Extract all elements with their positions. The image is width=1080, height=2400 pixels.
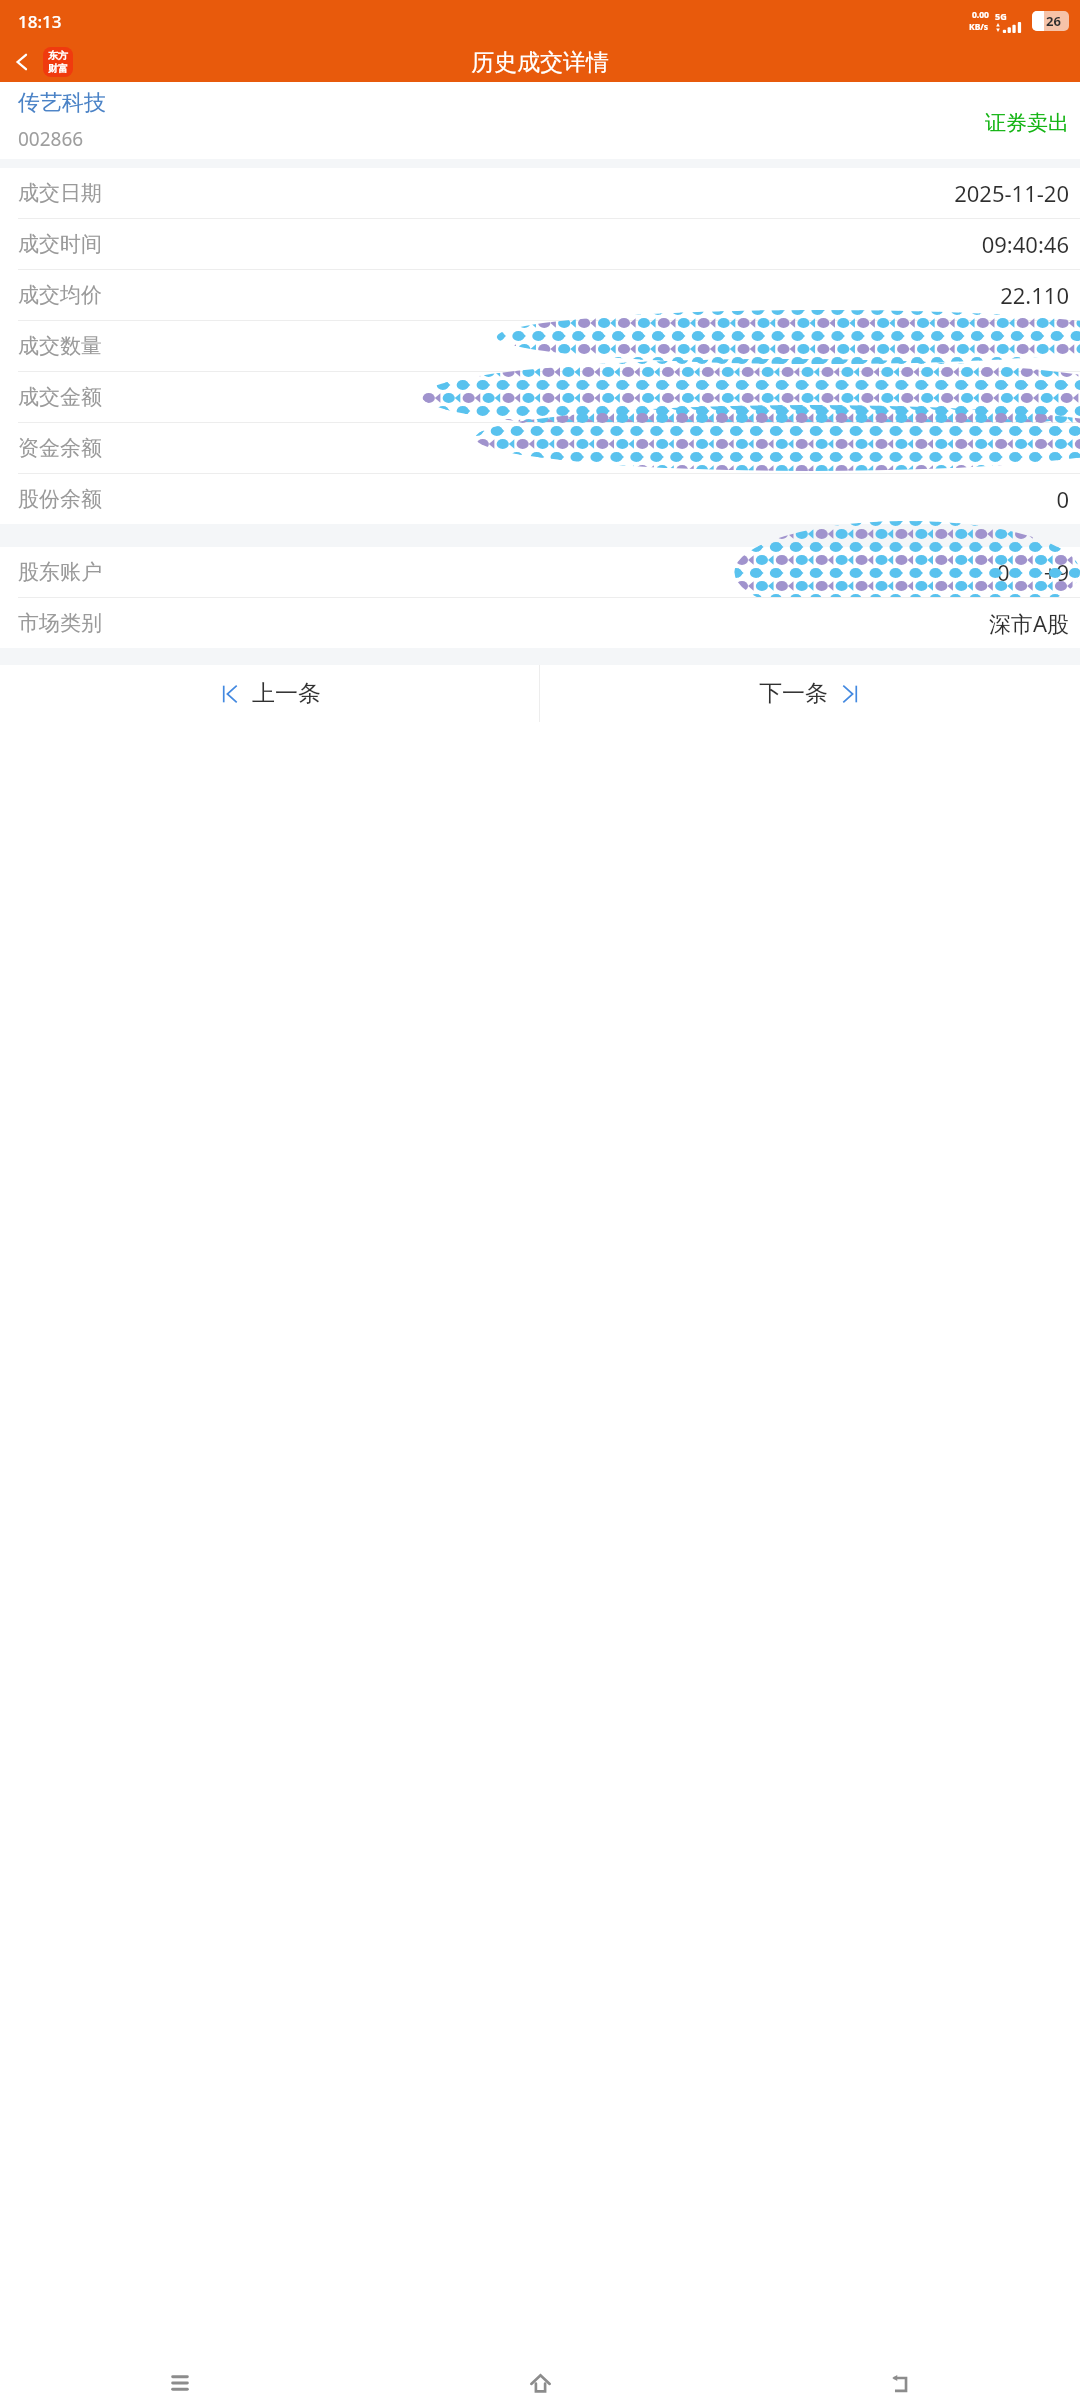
button[interactable]: Back — [0, 42, 44, 82]
button[interactable]: 下一条 — [540, 665, 1080, 722]
staticText: 股东账户 — [18, 559, 102, 585]
button[interactable]: Back — [720, 2366, 1080, 2400]
staticText: 下一条 — [759, 679, 828, 708]
staticText: 18:13 — [18, 10, 62, 33]
button[interactable]: 上一条 — [0, 665, 539, 722]
button[interactable]: 成交数量 — [0, 321, 1080, 371]
staticText: KB/s — [969, 21, 989, 33]
button[interactable]: 成交均价 — [0, 270, 1080, 320]
staticText: 深市A股 — [988, 608, 1069, 638]
button[interactable]: Home — [360, 2366, 720, 2400]
staticText: 09:40:46 — [981, 229, 1069, 259]
button[interactable]: 成交时间 — [0, 219, 1080, 269]
staticText: 0.00 — [972, 9, 989, 21]
staticText: 成交均价 — [18, 282, 102, 308]
staticText: 证券卖出 — [985, 110, 1069, 136]
staticText: 002866 — [18, 126, 84, 152]
staticText: 成交时间 — [18, 231, 102, 257]
staticText: 股份余额 — [18, 486, 102, 512]
staticText: 上一条 — [252, 679, 321, 708]
staticText: 东方 — [48, 49, 68, 62]
staticText: 传艺科技 — [18, 89, 106, 117]
staticText: 26 — [1046, 12, 1061, 30]
button[interactable]: Recents — [0, 2366, 360, 2400]
button[interactable]: 成交日期 — [0, 168, 1080, 218]
staticText: 成交日期 — [18, 180, 102, 206]
staticText: 5G — [995, 10, 1007, 22]
staticText: 2025-11-20 — [954, 178, 1069, 208]
button[interactable]: 股东账户 — [0, 547, 1080, 597]
button[interactable]: 市场类别 — [0, 598, 1080, 648]
button[interactable]: 成交金额 — [0, 372, 1080, 422]
button[interactable]: 资金余额 — [0, 423, 1080, 473]
staticText: 成交金额 — [18, 384, 102, 410]
staticText: 市场类别 — [18, 610, 102, 636]
staticText: 历史成交详情 — [471, 48, 609, 77]
staticText: 0 — [1056, 484, 1069, 514]
staticText: 财富 — [48, 62, 68, 75]
staticText: 成交数量 — [18, 333, 102, 359]
staticText: 0 +9 — [996, 557, 1069, 587]
staticText: 资金余额 — [18, 435, 102, 461]
button[interactable]: 股份余额 — [0, 474, 1080, 524]
staticText: 22.110 — [1000, 280, 1069, 310]
button[interactable]: 东方财富 — [43, 47, 73, 77]
